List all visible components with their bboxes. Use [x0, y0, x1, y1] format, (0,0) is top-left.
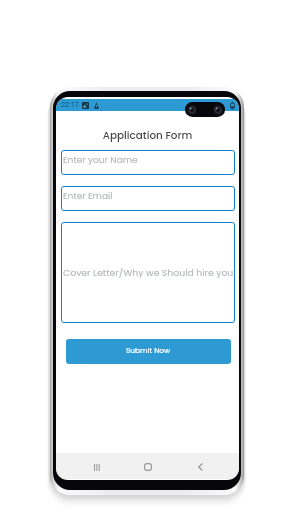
button[interactable]: Recent apps: [86, 456, 108, 478]
staticText: Enter your Name: [63, 154, 138, 167]
staticText: Enter Email: [63, 190, 113, 203]
button[interactable]: Cover Letter/Why we Should hire you: [61, 222, 235, 323]
button[interactable]: Submit Now: [66, 339, 231, 364]
staticText: Application Form: [56, 128, 239, 143]
staticText: 22:17: [61, 100, 79, 108]
button[interactable]: Enter Email: [61, 186, 235, 211]
staticText: Cover Letter/Why we Should hire you: [63, 266, 234, 279]
button[interactable]: Home: [137, 456, 159, 478]
staticText: Submit Now: [126, 345, 171, 355]
button[interactable]: Enter your Name: [61, 150, 235, 175]
button[interactable]: Back: [189, 456, 211, 478]
